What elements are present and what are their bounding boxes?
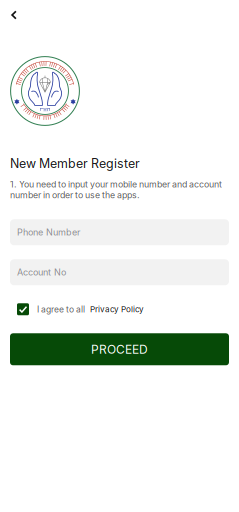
button[interactable]: Privacy Policy (85, 304, 144, 314)
staticText: Privacy Policy (90, 304, 144, 314)
button[interactable]: Account No (10, 259, 229, 285)
button[interactable]: PROCEED (10, 333, 229, 365)
staticText: Account No (17, 267, 66, 278)
button[interactable]: Back (0, 1, 36, 29)
staticText: I agree to all (37, 304, 85, 314)
staticText: New Member Register (10, 156, 140, 171)
staticText: 1. You need to input your mobile number … (10, 179, 222, 200)
staticText: PROCEED (91, 342, 148, 356)
button[interactable]: Phone Number (10, 219, 229, 245)
staticText: Phone Number (17, 227, 80, 238)
button[interactable]: I agree to all (17, 303, 29, 315)
